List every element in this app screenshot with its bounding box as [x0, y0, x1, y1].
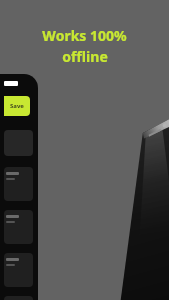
staticText: Works 100% — [42, 26, 127, 45]
button[interactable] — [4, 167, 33, 201]
staticText: Save — [10, 102, 24, 110]
button[interactable] — [4, 253, 33, 287]
staticText: offline — [62, 47, 108, 66]
button[interactable]: Field — [4, 81, 18, 86]
button[interactable]: Field — [0, 74, 38, 300]
button[interactable] — [4, 210, 33, 244]
button[interactable] — [4, 296, 33, 300]
other: Phone showing the app — [0, 0, 169, 300]
button[interactable]: Save — [4, 96, 30, 116]
